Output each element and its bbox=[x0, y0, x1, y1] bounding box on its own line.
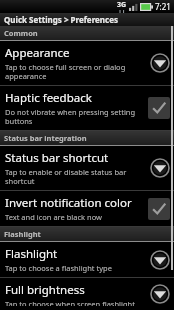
button[interactable]: Flashlight bbox=[0, 242, 174, 278]
other: Toggle setting bbox=[148, 97, 170, 119]
staticText: Flashlight bbox=[4, 229, 41, 239]
other: Toggle setting bbox=[148, 198, 170, 220]
staticText: Text and icon are black now bbox=[5, 212, 102, 222]
staticText: Appearance bbox=[5, 45, 70, 61]
other: Open options bbox=[150, 250, 170, 270]
staticText: Tap to enable or disable status bar shor… bbox=[5, 167, 147, 186]
staticText: Flashlight bbox=[5, 246, 58, 262]
button[interactable]: Haptic feedback bbox=[0, 86, 174, 131]
button[interactable]: Status bar shortcut bbox=[0, 146, 174, 191]
staticText: Invert notification color bbox=[5, 195, 132, 211]
staticText: Quick Settings > Preferences bbox=[4, 14, 118, 25]
other: Open options bbox=[150, 158, 170, 178]
other: Open options bbox=[150, 284, 170, 304]
staticText: Full brightness bbox=[5, 282, 85, 298]
button[interactable]: Appearance bbox=[0, 41, 174, 86]
staticText: Tap to choose when screen flashlight sha… bbox=[5, 299, 147, 306]
button[interactable]: Invert notification color bbox=[0, 191, 174, 227]
staticText: Haptic feedback bbox=[5, 90, 92, 106]
staticText: 3G bbox=[117, 0, 127, 10]
button[interactable]: Full brightness bbox=[0, 278, 174, 310]
staticText: Status bar shortcut bbox=[5, 150, 109, 166]
staticText: Common bbox=[4, 28, 38, 38]
staticText: Tap to choose full screen or dialog appe… bbox=[5, 62, 147, 81]
staticText: Status bar integration bbox=[4, 133, 87, 143]
staticText: 7:21 bbox=[155, 1, 171, 12]
staticText: Tap to choose a flashlight type bbox=[5, 263, 112, 273]
staticText: Do not vibrate when pressing setting but… bbox=[5, 107, 145, 126]
other: Open options bbox=[150, 53, 170, 73]
